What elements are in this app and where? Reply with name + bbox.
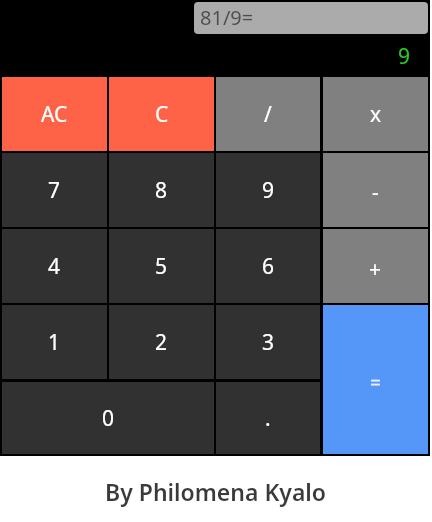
button[interactable]: 3: [216, 305, 320, 379]
staticText: 1: [48, 328, 61, 357]
button[interactable]: 0: [2, 382, 214, 454]
button[interactable]: C: [109, 77, 214, 151]
button[interactable]: 1: [2, 305, 107, 379]
button[interactable]: 81/9=: [194, 2, 428, 34]
button[interactable]: 6: [216, 229, 320, 303]
button[interactable]: -: [323, 153, 428, 227]
button[interactable]: +: [323, 229, 428, 303]
staticText: 9: [262, 176, 275, 205]
staticText: C: [155, 100, 169, 129]
button[interactable]: 5: [109, 229, 214, 303]
button[interactable]: /: [216, 77, 320, 151]
button[interactable]: 9: [216, 153, 320, 227]
staticText: 5: [155, 252, 168, 281]
button[interactable]: x: [323, 77, 428, 151]
staticText: 0: [102, 404, 115, 433]
button[interactable]: 2: [109, 305, 214, 379]
staticText: AC: [41, 100, 68, 129]
button[interactable]: AC: [2, 77, 107, 151]
staticText: 8: [155, 176, 168, 205]
staticText: 4: [48, 252, 61, 281]
button[interactable]: 7: [2, 153, 107, 227]
button[interactable]: 4: [2, 229, 107, 303]
staticText: 81/9=: [200, 4, 254, 31]
staticText: 7: [48, 176, 61, 205]
button[interactable]: =: [323, 305, 428, 454]
staticText: -: [372, 178, 379, 207]
staticText: .: [265, 404, 271, 433]
button[interactable]: 8: [109, 153, 214, 227]
staticText: 2: [155, 328, 168, 357]
staticText: 6: [262, 252, 275, 281]
staticText: 9: [398, 42, 411, 71]
staticText: 3: [262, 328, 275, 357]
button[interactable]: .: [216, 382, 320, 454]
staticText: +: [369, 255, 382, 284]
staticText: =: [370, 370, 381, 396]
staticText: x: [370, 100, 382, 129]
staticText: By Philomena Kyalo: [105, 476, 327, 507]
staticText: /: [264, 100, 272, 129]
